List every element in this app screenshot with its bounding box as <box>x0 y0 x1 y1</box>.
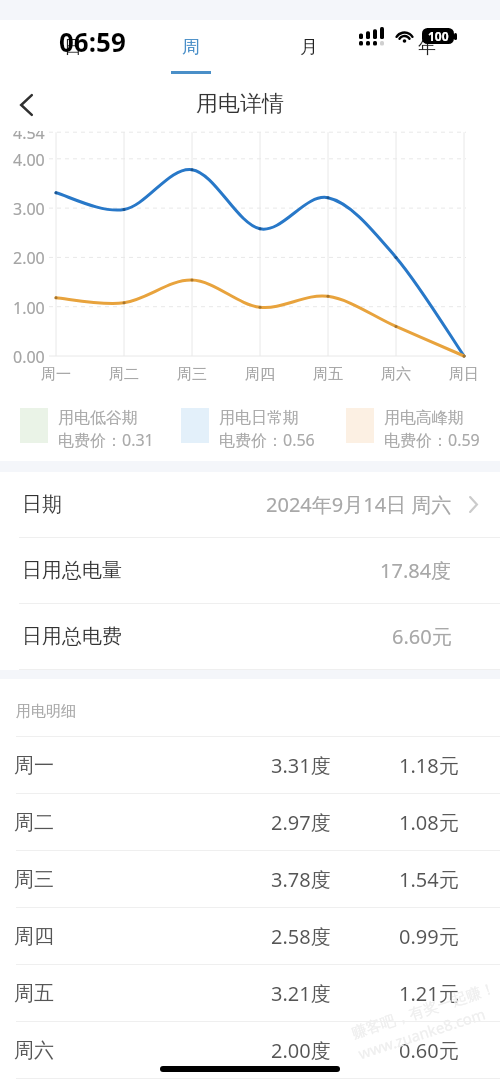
staticText: 日用总电费 <box>22 624 122 649</box>
staticText: 用电高峰期 <box>384 408 464 428</box>
staticText: 周五 <box>14 981 54 1006</box>
staticText: www.zuanke8.com <box>356 1003 488 1063</box>
staticText: 用电详情 <box>196 90 284 118</box>
staticText: 06:59 <box>59 24 126 59</box>
staticText: 2024年9月14日 周六 <box>266 491 452 518</box>
staticText: 1.08元 <box>399 809 459 836</box>
staticText: 赚客吧，有奖一起赚！ <box>349 979 498 1043</box>
staticText: 1.21元 <box>399 980 459 1007</box>
staticText: 周一 <box>41 365 71 384</box>
button[interactable]: 日用总电量 <box>0 538 500 603</box>
staticText: 17.84度 <box>380 557 452 584</box>
staticText: 周二 <box>109 365 139 384</box>
staticText: 0.60元 <box>399 1037 459 1064</box>
button[interactable]: 周三 <box>0 851 500 907</box>
button[interactable]: 周六 <box>0 1022 500 1078</box>
staticText: 周六 <box>381 365 411 384</box>
button[interactable]: 周四 <box>0 908 500 964</box>
staticText: 4.54 <box>13 131 45 144</box>
button[interactable]: 年 <box>397 36 457 74</box>
staticText: 3.31度 <box>271 752 331 779</box>
staticText: 2.97度 <box>271 809 331 836</box>
staticText: 用电明细 <box>16 702 76 721</box>
staticText: 100 <box>428 28 449 44</box>
staticText: 1.18元 <box>399 752 459 779</box>
staticText: 日期 <box>22 492 62 517</box>
staticText: 6.60元 <box>392 623 452 650</box>
staticText: 3.78度 <box>271 866 331 893</box>
staticText: 用电低谷期 <box>58 408 138 428</box>
button[interactable]: 周 <box>161 36 221 74</box>
button[interactable]: 周二 <box>0 794 500 850</box>
staticText: 0.00 <box>13 346 45 368</box>
staticText: 0.99元 <box>399 923 459 950</box>
button[interactable]: 月 <box>279 36 339 74</box>
staticText: 周四 <box>245 365 275 384</box>
staticText: 1.54元 <box>399 866 459 893</box>
button[interactable]: 用电高峰期 <box>346 408 480 451</box>
staticText: 周日 <box>449 365 479 384</box>
staticText: 3.21度 <box>271 980 331 1007</box>
button[interactable]: 日期 <box>0 472 500 537</box>
staticText: 日 <box>64 36 82 59</box>
button[interactable]: 日用总电费 <box>0 604 500 669</box>
staticText: 2.00度 <box>271 1037 331 1064</box>
staticText: 3.00 <box>13 198 45 220</box>
staticText: 周二 <box>14 810 54 835</box>
staticText: 周三 <box>177 365 207 384</box>
staticText: 用电日常期 <box>219 408 299 428</box>
staticText: 月 <box>300 36 318 59</box>
staticText: 1.00 <box>13 297 45 319</box>
button[interactable]: 用电日常期 <box>181 408 315 451</box>
staticText: 4.00 <box>13 149 45 171</box>
button[interactable]: 用电低谷期 <box>20 408 154 451</box>
staticText: 2.58度 <box>271 923 331 950</box>
button[interactable]: 周一 <box>0 737 500 793</box>
staticText: 电费价：0.56 <box>219 429 315 451</box>
staticText: 年 <box>418 36 436 59</box>
staticText: 电费价：0.59 <box>384 429 480 451</box>
button[interactable]: 周五 <box>0 965 500 1021</box>
staticText: 周五 <box>313 365 343 384</box>
staticText: 日用总电量 <box>22 558 122 583</box>
button[interactable]: 日 <box>43 36 103 74</box>
button[interactable]: Back <box>6 85 46 125</box>
staticText: 周四 <box>14 924 54 949</box>
staticText: 周三 <box>14 867 54 892</box>
staticText: 周一 <box>14 753 54 778</box>
staticText: 2.00 <box>13 247 45 269</box>
staticText: 周六 <box>14 1038 54 1063</box>
staticText: 电费价：0.31 <box>58 429 154 451</box>
staticText: 周 <box>182 36 200 59</box>
